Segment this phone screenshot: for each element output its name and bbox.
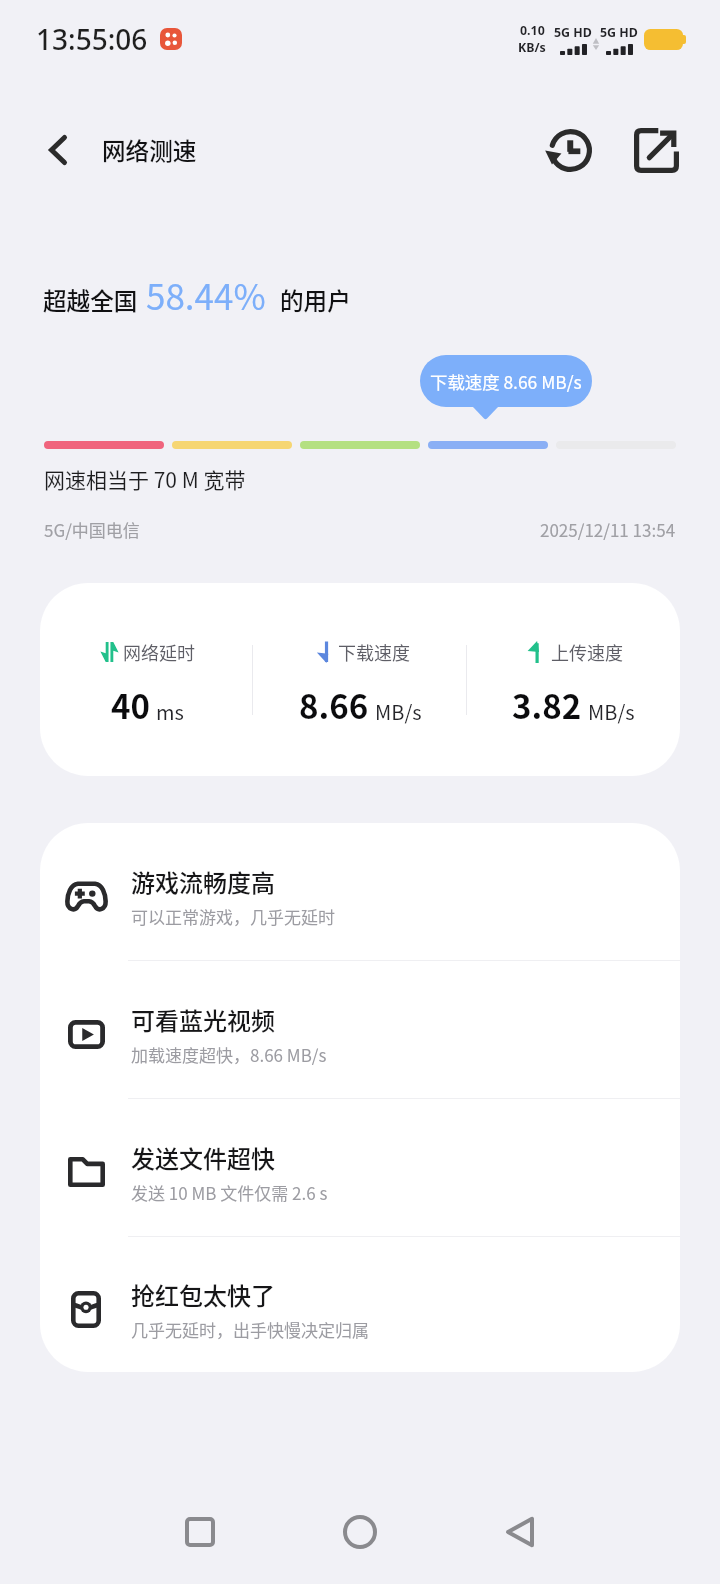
staticText: 超越全国 — [43, 283, 138, 317]
staticText: 发送文件超快 — [131, 1140, 275, 1175]
staticText: 发送 10 MB 文件仅需 2.6 s — [131, 1180, 328, 1205]
staticText: 网速相当于 70 M 宽带 — [44, 464, 246, 494]
staticText: 8.66 — [299, 681, 369, 729]
staticText: MB/s — [588, 697, 635, 726]
staticText: 5G HD — [554, 24, 592, 41]
staticText: 13:55:06 — [36, 20, 148, 58]
staticText: 下载速度 — [338, 639, 410, 665]
staticText: 可看蓝光视频 — [131, 1002, 275, 1037]
button[interactable]: Recents — [120, 1488, 280, 1576]
staticText: 0.10 — [520, 22, 545, 39]
button[interactable]: Back — [16, 108, 100, 192]
button[interactable]: 可看蓝光视频 — [40, 961, 680, 1098]
button[interactable]: Back — [440, 1488, 600, 1576]
staticText: 加载速度超快，8.66 MB/s — [131, 1042, 327, 1067]
staticText: KB/s — [518, 39, 546, 56]
staticText: 5G/中国电信 — [44, 517, 140, 542]
button[interactable]: 抢红包太快了 — [40, 1237, 680, 1372]
button[interactable]: 游戏流畅度高 — [40, 823, 680, 960]
staticText: 上传速度 — [551, 639, 623, 665]
button[interactable]: Share — [614, 108, 698, 192]
staticText: 游戏流畅度高 — [131, 864, 275, 899]
staticText: 网络测速 — [102, 133, 197, 167]
button[interactable]: History — [528, 108, 612, 192]
staticText: 几乎无延时，出手快慢决定归属 — [131, 1317, 369, 1342]
staticText: 40 — [111, 681, 150, 729]
button[interactable]: Home — [280, 1488, 440, 1576]
staticText: ms — [156, 697, 184, 726]
staticText: 下载速度 8.66 MB/s — [430, 369, 582, 394]
staticText: MB/s — [375, 697, 422, 726]
staticText: 可以正常游戏，几乎无延时 — [131, 904, 335, 929]
staticText: 58.44% — [146, 269, 266, 320]
staticText: 2025/12/11 13:54 — [540, 517, 676, 542]
staticText: 5G HD — [600, 24, 638, 41]
button[interactable]: 发送文件超快 — [40, 1099, 680, 1236]
staticText: 3.82 — [512, 681, 582, 729]
staticText: 网络延时 — [123, 639, 195, 665]
staticText: 的用户 — [280, 283, 351, 317]
staticText: 抢红包太快了 — [131, 1277, 275, 1312]
